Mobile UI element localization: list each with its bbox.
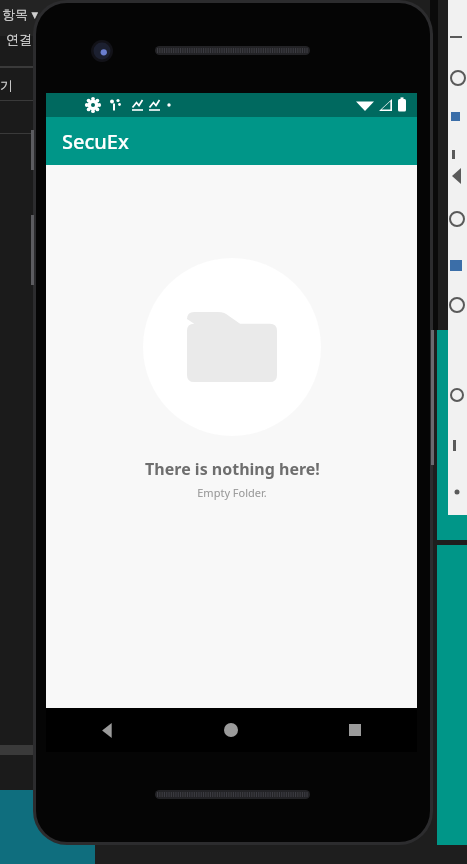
staticText: Empty Folder. xyxy=(197,485,267,500)
staticText: 연결 xyxy=(6,31,32,47)
staticText: 기 xyxy=(0,77,13,93)
staticText: SecuEx xyxy=(62,128,129,155)
staticText: There is nothing here! xyxy=(145,458,320,480)
button[interactable]: Recent apps xyxy=(293,708,417,752)
staticText: 항목 ▾ xyxy=(2,5,38,23)
button[interactable]: Back xyxy=(46,708,169,752)
button[interactable]: Home xyxy=(169,708,293,752)
